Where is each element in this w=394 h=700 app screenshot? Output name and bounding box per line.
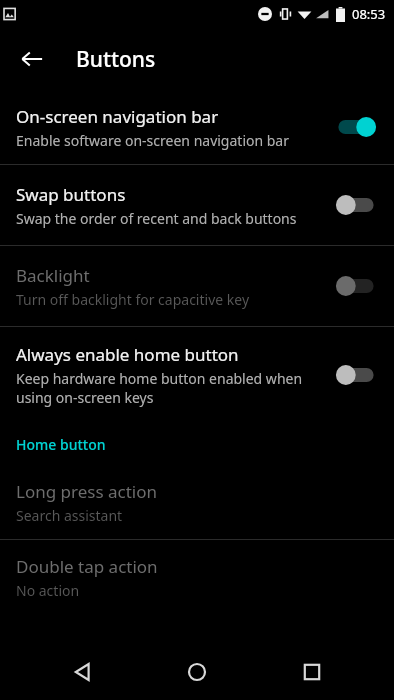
button[interactable]: On xyxy=(334,112,378,142)
button[interactable]: Off xyxy=(334,271,378,301)
staticText: On-screen navigation bar xyxy=(16,105,219,128)
staticText: No action xyxy=(16,581,80,600)
button[interactable]: Back xyxy=(10,37,54,81)
staticText: Always enable home button xyxy=(16,343,239,366)
staticText: Search assistant xyxy=(16,506,123,525)
button[interactable]: Recents xyxy=(280,644,344,700)
staticText: 08:53 xyxy=(352,5,386,23)
staticText: Turn off backlight for capacitive key xyxy=(16,290,250,309)
staticText: Enable software on-screen navigation bar xyxy=(16,131,289,150)
staticText: Home button xyxy=(16,435,106,454)
staticText: Double tap action xyxy=(16,555,158,578)
button[interactable]: On-screen navigation bar xyxy=(0,90,394,164)
staticText: Keep hardware home button enabled when u… xyxy=(16,369,322,407)
staticText: Swap the order of recent and back button… xyxy=(16,209,297,228)
button[interactable]: Off xyxy=(334,190,378,220)
button[interactable]: Double tap action xyxy=(0,540,394,614)
staticText: Backlight xyxy=(16,264,90,287)
button[interactable]: Off xyxy=(334,360,378,390)
button[interactable]: Home xyxy=(165,644,229,700)
button[interactable]: Long press action xyxy=(0,465,394,539)
button[interactable]: Backlight xyxy=(0,246,394,326)
button[interactable]: Swap buttons xyxy=(0,165,394,245)
staticText: Long press action xyxy=(16,480,158,503)
button[interactable]: Always enable home button xyxy=(0,327,394,423)
staticText: Buttons xyxy=(76,45,156,74)
button[interactable]: Back xyxy=(51,644,115,700)
staticText: Swap buttons xyxy=(16,183,126,206)
